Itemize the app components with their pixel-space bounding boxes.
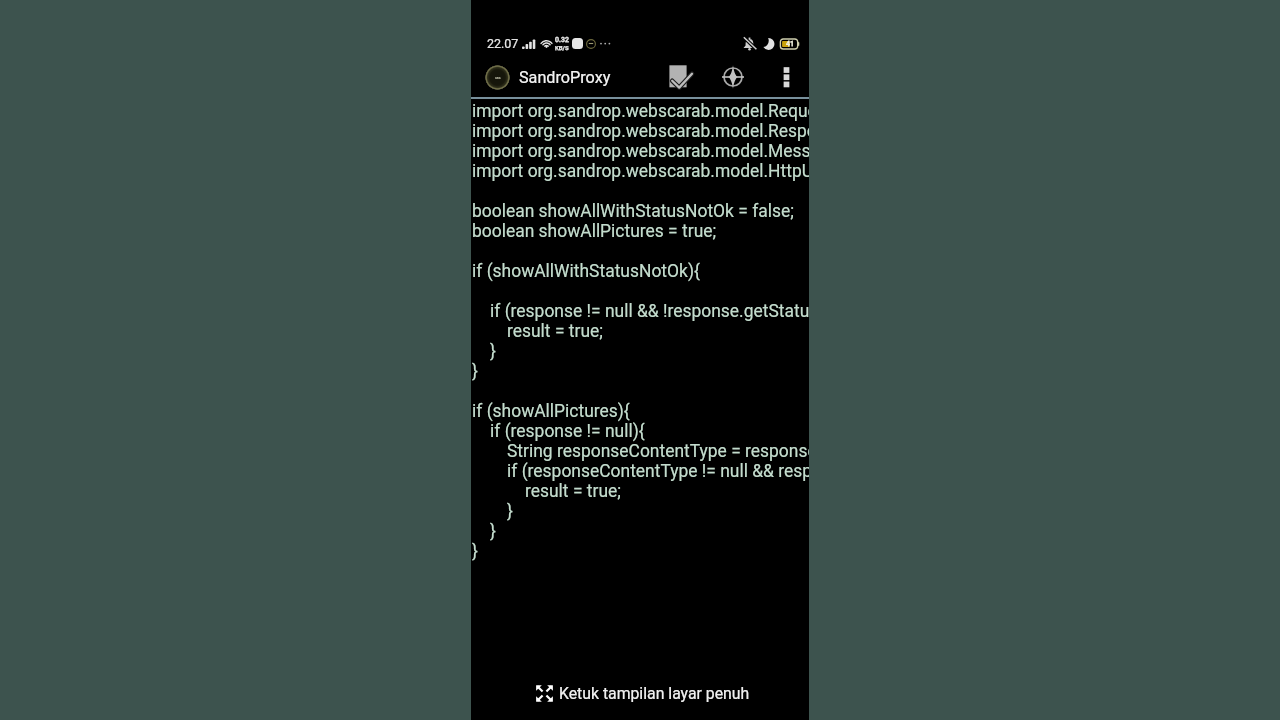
staticText: String responseContentType = response.ge… xyxy=(507,441,809,461)
staticText: Ketuk tampilan layar penuh xyxy=(559,684,750,703)
staticText: } xyxy=(490,521,496,541)
staticText: import org.sandrop.webscarab.model.HttpU… xyxy=(472,161,809,181)
staticText: sas xyxy=(495,76,501,80)
staticText: if (showAllPictures){ xyxy=(472,401,630,421)
staticText: 0.32 xyxy=(555,36,569,44)
staticText: } xyxy=(472,361,478,381)
staticText: } xyxy=(490,341,496,361)
button[interactable]: Locate xyxy=(702,57,764,97)
staticText: if (responseContentType != null && respo… xyxy=(507,461,809,481)
button[interactable]: Ketuk tampilan layar penuh xyxy=(473,666,811,720)
staticText: import org.sandrop.webscarab.model.Messa… xyxy=(472,141,809,161)
button[interactable]: Script editor xyxy=(660,57,702,97)
staticText: } xyxy=(507,501,513,521)
button[interactable]: More options xyxy=(764,57,809,97)
staticText: if (showAllWithStatusNotOk){ xyxy=(472,261,700,281)
staticText: import org.sandrop.webscarab.model.Respo… xyxy=(472,121,809,141)
staticText: import org.sandrop.webscarab.model.Reque… xyxy=(472,101,809,121)
staticText: 22.07 xyxy=(487,36,519,51)
staticText: SandroProxy xyxy=(519,68,611,87)
staticText: KB/S xyxy=(555,44,569,51)
staticText: if (response != null){ xyxy=(490,421,645,441)
staticText: } xyxy=(472,541,478,561)
staticText: result = true; xyxy=(525,481,621,501)
staticText: if (response != null && !response.getSta… xyxy=(490,301,809,321)
staticText: 41 xyxy=(786,40,794,48)
staticText: boolean showAllPictures = true; xyxy=(472,221,717,241)
staticText: result = true; xyxy=(507,321,603,341)
staticText: boolean showAllWithStatusNotOk = false; xyxy=(472,201,794,221)
